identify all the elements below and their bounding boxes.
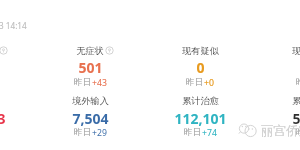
staticText: 105,653 — [0, 109, 6, 128]
staticText: +43 — [92, 77, 107, 89]
staticText: +74 — [202, 127, 217, 139]
button[interactable] — [0, 91, 31, 137]
staticText: 昨日 — [74, 77, 92, 88]
staticText: 0 — [196, 58, 205, 77]
staticText: 境外输入 — [72, 95, 109, 107]
staticText: 丽宫侨家 — [261, 123, 300, 139]
staticText: 3 14:14 — [0, 20, 27, 31]
staticText: 现有重症 — [292, 45, 300, 57]
staticText: 昨日 — [74, 127, 92, 138]
staticText: 累计治愈 — [182, 95, 219, 107]
staticText: 昨日 — [184, 127, 202, 138]
staticText: 112,101 — [174, 109, 227, 128]
staticText: 501 — [78, 58, 103, 77]
staticText: 累计死亡 — [292, 95, 300, 107]
staticText: 5,226 — [292, 109, 300, 128]
staticText: +0 — [204, 77, 214, 89]
staticText: 昨日 — [296, 127, 300, 138]
button[interactable] — [0, 41, 32, 87]
staticText: 无症状 — [76, 45, 104, 57]
button[interactable] — [148, 41, 252, 87]
staticText: +29 — [92, 127, 107, 139]
other: Info about 无症状 — [105, 46, 114, 55]
staticText: 现有疑似 — [182, 45, 219, 57]
button[interactable] — [258, 41, 300, 87]
staticText: 昨日 — [186, 77, 204, 88]
other: Info about 现有确诊 — [0, 46, 8, 55]
button[interactable] — [38, 91, 142, 137]
button[interactable] — [148, 91, 252, 137]
button[interactable] — [258, 91, 300, 137]
staticText: 昨日 — [296, 77, 300, 88]
staticText: 7,504 — [72, 109, 109, 128]
other: WeChat watermark — [238, 122, 258, 138]
button[interactable] — [38, 41, 142, 87]
